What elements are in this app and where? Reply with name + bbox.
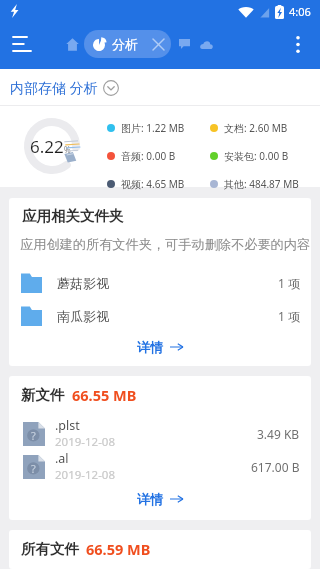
- button[interactable]: More options: [278, 24, 318, 64]
- button[interactable]: Cloud: [195, 33, 217, 55]
- staticText: 2019-12-08: [55, 434, 116, 450]
- staticText: 详情: [137, 339, 163, 355]
- staticText: 所有文件: [21, 540, 79, 558]
- staticText: 新文件: [21, 386, 65, 404]
- staticText: .plst: [55, 417, 80, 434]
- button[interactable]: 蘑菇影视: [9, 266, 311, 299]
- staticText: 66.59 MB: [86, 539, 151, 559]
- staticText: 2019-12-08: [55, 467, 116, 483]
- staticText: 3.49 KB: [257, 426, 300, 442]
- button[interactable]: 详情: [9, 486, 311, 512]
- staticText: 视频: 4.65 MB: [121, 177, 185, 191]
- button[interactable]: Close analysis: [147, 33, 169, 55]
- staticText: 1 项: [278, 275, 300, 291]
- staticText: 617.00 B: [251, 459, 300, 475]
- button[interactable]: 南瓜影视: [9, 299, 311, 332]
- staticText: 其他: 484.87 MB: [224, 177, 299, 191]
- staticText: 安装包: 0.00 B: [224, 149, 289, 163]
- staticText: %: [64, 144, 71, 155]
- staticText: .al: [55, 450, 69, 467]
- button[interactable]: Menu: [0, 22, 44, 66]
- staticText: 4:06: [289, 4, 311, 19]
- staticText: 南瓜影视: [57, 308, 109, 324]
- button[interactable]: 详情: [9, 334, 311, 360]
- button[interactable]: 分析: [84, 30, 171, 58]
- button[interactable]: Home: [61, 33, 83, 55]
- staticText: 详情: [137, 491, 163, 507]
- button[interactable]: Messages: [173, 33, 195, 55]
- staticText: 音频: 0.00 B: [121, 149, 176, 163]
- staticText: 应用相关文件夹: [22, 207, 124, 225]
- staticText: 66.55 MB: [72, 385, 137, 405]
- button[interactable]: ?: [9, 417, 311, 450]
- staticText: 图片: 1.22 MB: [121, 121, 185, 135]
- staticText: 6.22: [30, 135, 64, 158]
- button[interactable]: 内部存储 分析: [10, 78, 119, 97]
- staticText: 应用创建的所有文件夹，可手动删除不必要的内容: [20, 236, 311, 253]
- staticText: 分析: [112, 36, 138, 52]
- staticText: ?: [31, 461, 36, 476]
- staticText: 内部存储 分析: [10, 78, 98, 97]
- button[interactable]: ?: [9, 450, 311, 483]
- staticText: 蘑菇影视: [57, 275, 109, 291]
- staticText: 文档: 2.60 MB: [224, 121, 288, 135]
- staticText: 1 项: [278, 308, 300, 324]
- staticText: ?: [31, 428, 36, 443]
